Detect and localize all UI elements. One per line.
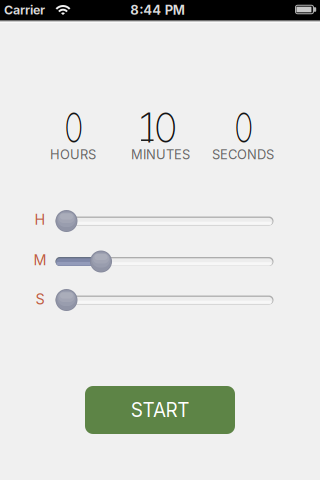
staticText: S [35, 290, 44, 308]
staticText: 8:44 [130, 2, 161, 18]
button[interactable]: START [85, 386, 235, 434]
staticText: HOURS [50, 147, 96, 162]
staticText: 0 [154, 102, 178, 152]
staticText: Carrier [4, 2, 45, 17]
staticText: H [34, 211, 45, 228]
staticText: 0 [62, 102, 86, 152]
button[interactable] [55, 287, 273, 313]
staticText: 1 [140, 102, 153, 152]
staticText: M [33, 251, 46, 269]
staticText: SECONDS [212, 147, 274, 162]
button[interactable] [55, 208, 273, 234]
staticText: PM [165, 2, 185, 18]
button[interactable] [55, 248, 273, 274]
staticText: START [131, 398, 189, 421]
staticText: MINUTES [131, 147, 190, 162]
staticText: 0 [232, 102, 256, 152]
